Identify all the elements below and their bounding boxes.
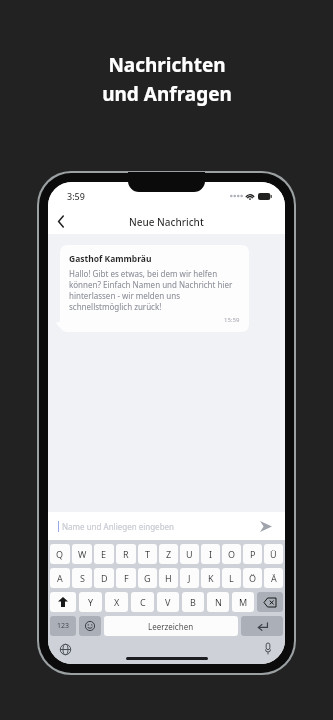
staticText: Ö	[249, 572, 257, 584]
staticText: Ä	[271, 572, 277, 584]
staticText: W	[78, 548, 87, 560]
button[interactable]: Zurück	[48, 209, 74, 234]
staticText: D	[101, 572, 108, 584]
staticText: X	[114, 596, 120, 608]
button[interactable]: Q	[50, 544, 70, 564]
button[interactable]: Emoji	[79, 616, 101, 636]
staticText: N	[215, 596, 222, 608]
button[interactable]: W	[72, 544, 92, 564]
button[interactable]: S	[72, 568, 92, 588]
staticText: und Anfragen	[102, 81, 232, 107]
button[interactable]: N	[207, 592, 229, 612]
button[interactable]: I	[201, 544, 220, 564]
staticText: S	[80, 572, 85, 584]
button[interactable]: A	[50, 568, 70, 588]
button[interactable]: Sprache wechseln	[56, 640, 74, 658]
staticText: G	[144, 572, 151, 584]
button[interactable]: T	[138, 544, 157, 564]
button[interactable]: Leerzeichen	[104, 616, 238, 636]
button[interactable]: Ä	[264, 568, 283, 588]
button[interactable]: V	[157, 592, 179, 612]
button[interactable]: M	[232, 592, 254, 612]
button[interactable]: Diktieren	[259, 640, 277, 658]
button[interactable]: 123	[50, 616, 76, 636]
button[interactable]: Senden	[257, 517, 275, 535]
staticText: 15:59	[224, 316, 240, 324]
staticText: F	[124, 572, 129, 584]
staticText: Q	[56, 548, 64, 560]
staticText: Ü	[270, 548, 277, 560]
staticText: L	[229, 572, 234, 584]
button[interactable]: Gasthof Kammbräu	[60, 245, 249, 332]
button[interactable]: Löschen	[257, 592, 283, 612]
button[interactable]: F	[116, 568, 136, 588]
staticText: P	[250, 548, 256, 560]
button[interactable]: K	[201, 568, 220, 588]
staticText: K	[208, 572, 214, 584]
staticText: R	[123, 548, 129, 560]
button[interactable]: P	[243, 544, 262, 564]
button[interactable]: R	[116, 544, 136, 564]
staticText: 123	[57, 621, 70, 631]
button[interactable]: C	[131, 592, 154, 612]
button[interactable]: Z	[159, 544, 178, 564]
button[interactable]: G	[138, 568, 157, 588]
staticText: T	[145, 548, 151, 560]
button[interactable]: Ü	[264, 544, 283, 564]
button[interactable]: L	[222, 568, 241, 588]
staticText: H	[165, 572, 172, 584]
staticText: B	[190, 596, 196, 608]
staticText: Nachrichten	[108, 52, 226, 78]
button[interactable]: U	[180, 544, 199, 564]
staticText: Hallo! Gibt es etwas, bei dem wir helfen…	[69, 268, 240, 312]
staticText: Neue Nachricht	[129, 215, 204, 229]
staticText: V	[165, 596, 171, 608]
button[interactable]: Ö	[243, 568, 262, 588]
staticText: 3:59	[67, 190, 85, 202]
staticText: Y	[88, 596, 94, 608]
button[interactable]: D	[94, 568, 114, 588]
button[interactable]: Umschalt	[50, 592, 76, 612]
staticText: I	[209, 548, 213, 560]
staticText: Z	[166, 548, 172, 560]
button[interactable]: B	[182, 592, 204, 612]
staticText: U	[186, 548, 193, 560]
staticText: E	[101, 548, 107, 560]
button[interactable]: Eingabe	[241, 616, 283, 636]
button[interactable]: Y	[79, 592, 102, 612]
staticText: Name und Anliegen eingeben	[62, 521, 257, 532]
staticText: Leerzeichen	[148, 621, 194, 632]
button[interactable]: H	[159, 568, 178, 588]
button[interactable]: E	[94, 544, 114, 564]
button[interactable]: X	[105, 592, 128, 612]
button[interactable]: O	[222, 544, 241, 564]
staticText: Gasthof Kammbräu	[69, 253, 152, 265]
staticText: M	[239, 596, 248, 608]
staticText: O	[228, 548, 236, 560]
button[interactable]: J	[180, 568, 199, 588]
staticText: C	[140, 596, 146, 608]
staticText: J	[188, 572, 191, 584]
staticText: A	[57, 572, 63, 584]
